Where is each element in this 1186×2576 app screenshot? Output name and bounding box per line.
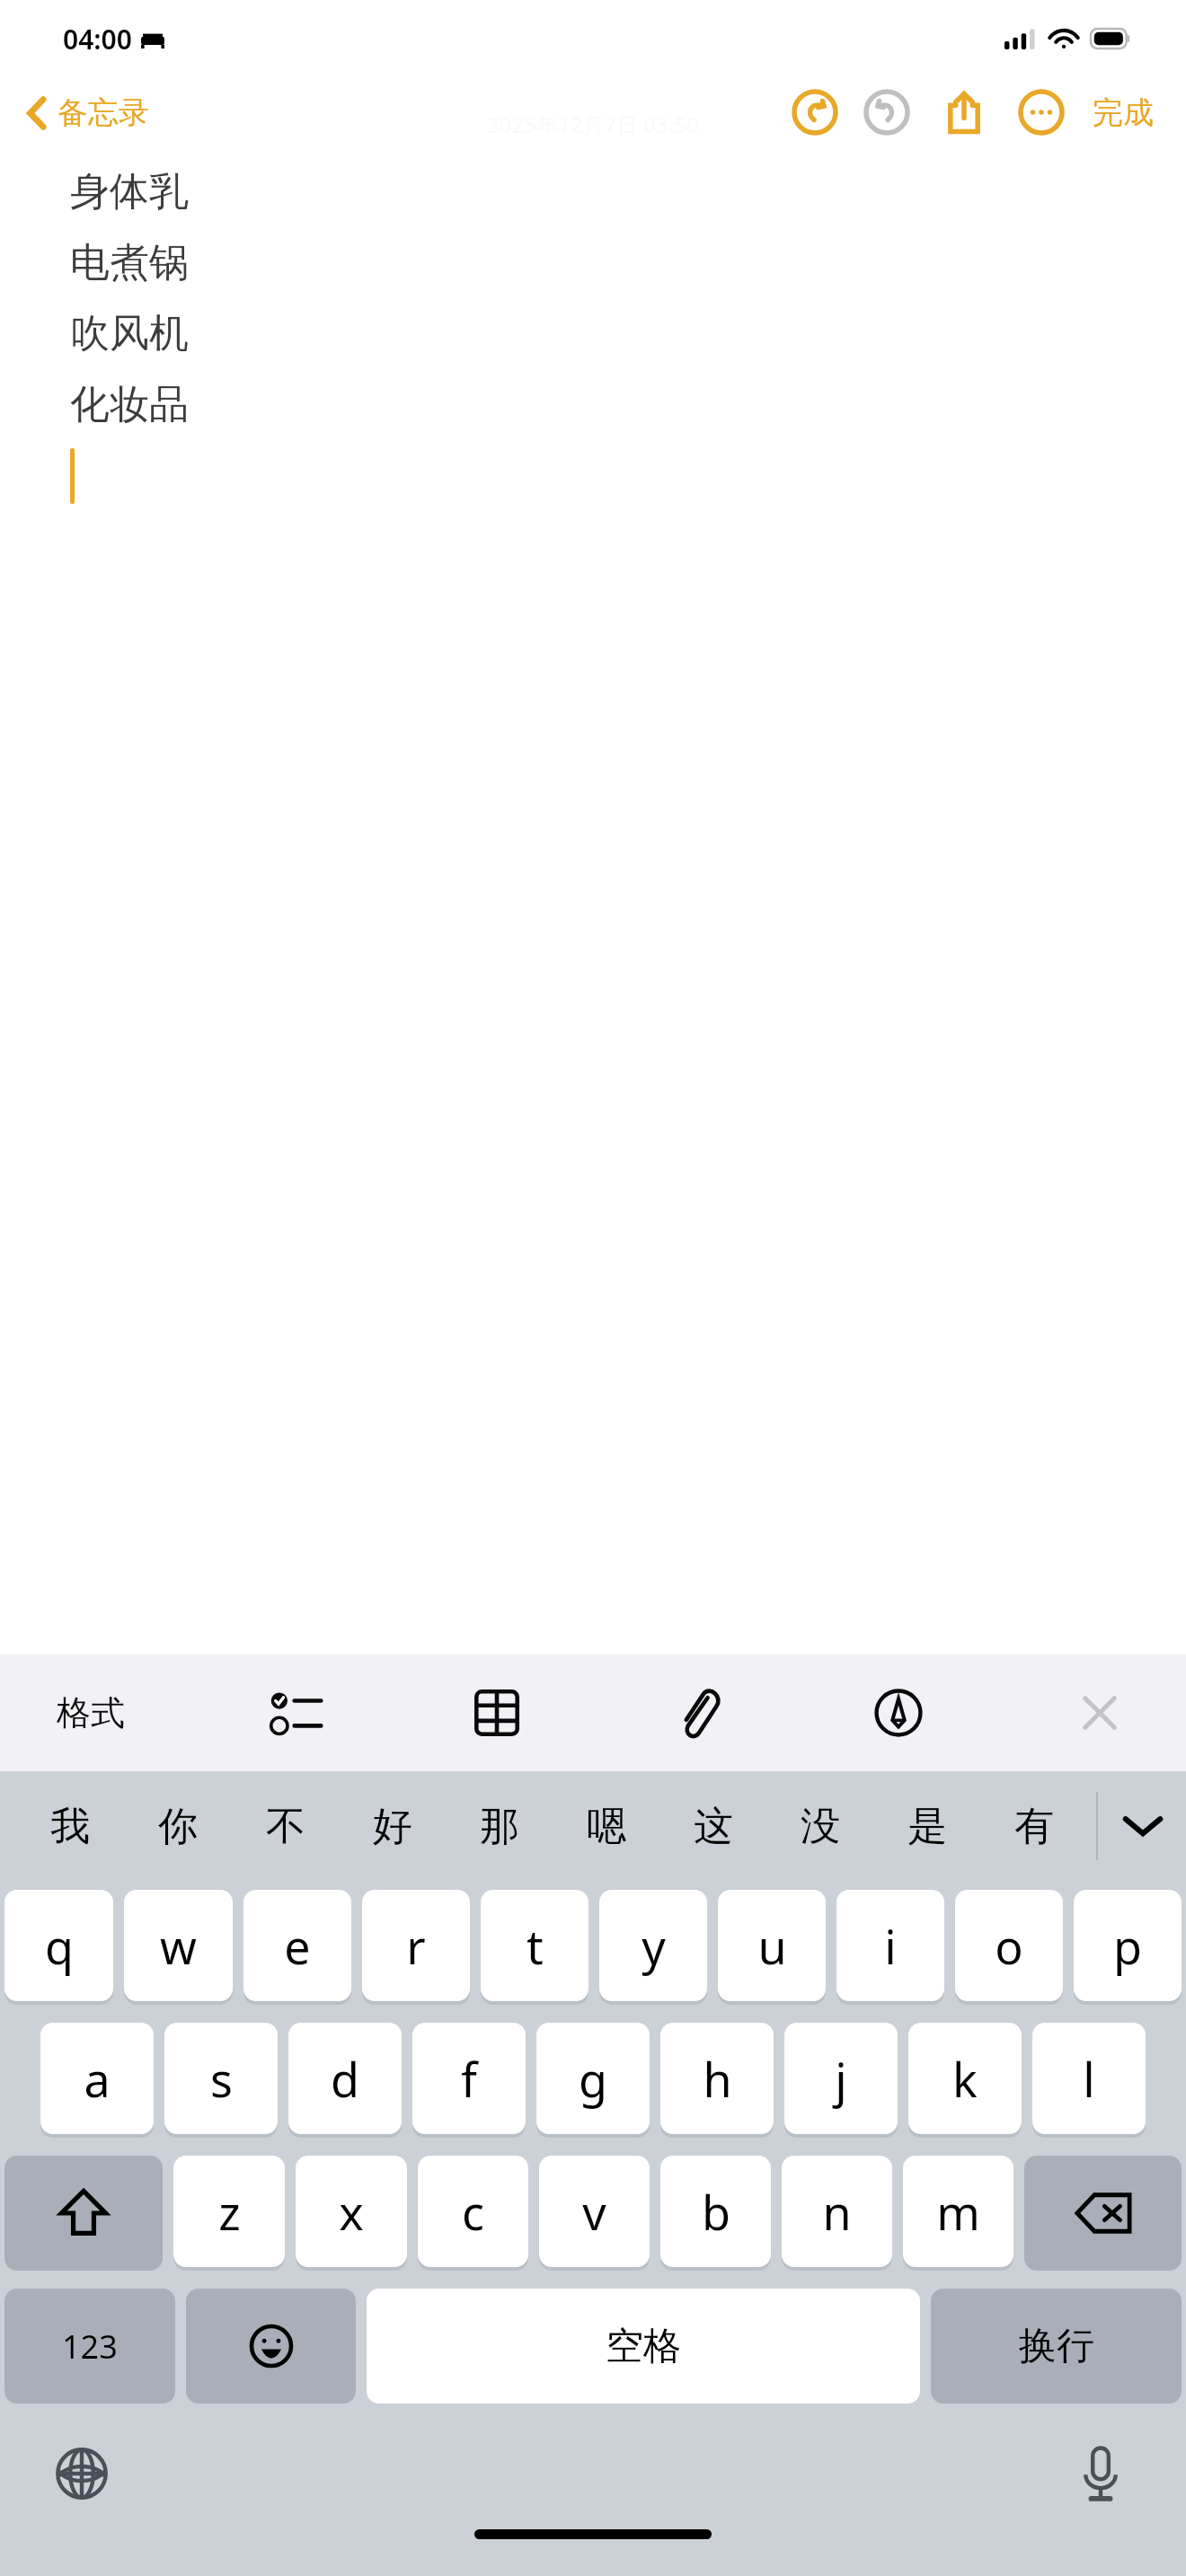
staticText: f xyxy=(461,2047,477,2111)
staticText: 换行 xyxy=(1019,2323,1094,2370)
staticText: t xyxy=(527,1914,544,1978)
staticText: 123 xyxy=(62,2325,118,2369)
button[interactable]: 换行 xyxy=(931,2289,1182,2404)
button[interactable]: More options xyxy=(1015,86,1067,138)
button[interactable]: Shift xyxy=(4,2156,163,2271)
staticText: 电煮锅 xyxy=(70,238,189,287)
button[interactable]: q xyxy=(4,1890,113,2001)
button[interactable]: x xyxy=(296,2156,407,2267)
staticText: v xyxy=(582,2180,606,2244)
button[interactable]: 嗯 xyxy=(553,1771,659,1881)
staticText: 嗯 xyxy=(587,1802,626,1851)
button[interactable]: e xyxy=(243,1890,351,2001)
staticText: 完成 xyxy=(1093,93,1154,132)
button[interactable]: h xyxy=(660,2023,774,2134)
button[interactable]: 空格 xyxy=(367,2289,920,2404)
staticText: e xyxy=(284,1914,311,1978)
button[interactable]: 是 xyxy=(873,1771,980,1881)
staticText: 这 xyxy=(694,1802,733,1851)
button[interactable]: Checklist xyxy=(252,1672,341,1753)
button[interactable]: Dictate xyxy=(1062,2435,1139,2512)
button[interactable]: Delete xyxy=(1024,2156,1182,2271)
staticText: x xyxy=(339,2180,364,2244)
staticText: o xyxy=(995,1914,1023,1978)
button[interactable]: a xyxy=(40,2023,154,2134)
staticText: k xyxy=(952,2047,978,2111)
button[interactable]: 你 xyxy=(124,1771,232,1881)
staticText: b xyxy=(702,2180,730,2244)
button[interactable]: 格式 xyxy=(41,1672,140,1753)
staticText: 有 xyxy=(1014,1802,1054,1851)
button[interactable]: 完成 xyxy=(1087,88,1159,137)
button[interactable]: w xyxy=(124,1890,233,2001)
staticText: g xyxy=(579,2047,607,2111)
button[interactable]: i xyxy=(836,1890,944,2001)
staticText: 身体乳 xyxy=(70,167,189,216)
button[interactable]: p xyxy=(1074,1890,1182,2001)
staticText: 我 xyxy=(50,1802,90,1851)
button[interactable]: 好 xyxy=(339,1771,446,1881)
staticText: 那 xyxy=(480,1802,519,1851)
button[interactable]: 这 xyxy=(659,1771,766,1881)
button[interactable]: y xyxy=(599,1890,707,2001)
button[interactable]: Close xyxy=(1055,1672,1145,1753)
button[interactable]: 那 xyxy=(446,1771,553,1881)
button[interactable]: Markup xyxy=(854,1672,943,1753)
button[interactable]: 没 xyxy=(766,1771,873,1881)
button[interactable]: t xyxy=(481,1890,589,2001)
staticText: l xyxy=(1083,2047,1095,2111)
button[interactable]: k xyxy=(908,2023,1022,2134)
button[interactable]: n xyxy=(782,2156,892,2267)
button[interactable]: 我 xyxy=(16,1771,124,1881)
staticText: i xyxy=(884,1914,897,1978)
button[interactable]: j xyxy=(784,2023,898,2134)
staticText: 没 xyxy=(801,1802,840,1851)
button[interactable]: Undo xyxy=(789,86,841,138)
staticText: 好 xyxy=(373,1802,412,1851)
staticText: w xyxy=(160,1914,197,1978)
staticText: n xyxy=(822,2180,852,2244)
button[interactable]: 备忘录 xyxy=(20,88,156,137)
staticText: 空格 xyxy=(606,2323,681,2370)
staticText: j xyxy=(835,2047,847,2111)
button[interactable]: d xyxy=(288,2023,402,2134)
button[interactable]: u xyxy=(718,1890,826,2001)
button[interactable]: b xyxy=(660,2156,771,2267)
staticText: r xyxy=(406,1914,426,1978)
staticText: 不 xyxy=(266,1802,305,1851)
button[interactable]: 有 xyxy=(980,1771,1087,1881)
staticText: q xyxy=(45,1914,74,1978)
staticText: u xyxy=(757,1914,787,1978)
staticText: 吹风机 xyxy=(70,309,189,358)
staticText: s xyxy=(210,2047,233,2111)
staticText: 化妆品 xyxy=(70,380,189,429)
button[interactable]: Emoji xyxy=(186,2289,356,2404)
staticText: m xyxy=(936,2180,980,2244)
button[interactable]: Table xyxy=(452,1672,542,1753)
staticText: p xyxy=(1113,1914,1142,1978)
button[interactable]: 不 xyxy=(232,1771,339,1881)
button[interactable]: m xyxy=(903,2156,1013,2267)
staticText: h xyxy=(703,2047,732,2111)
button[interactable]: 123 xyxy=(4,2289,175,2404)
button[interactable]: Attach xyxy=(653,1672,743,1753)
button[interactable]: l xyxy=(1032,2023,1146,2134)
button[interactable]: s xyxy=(164,2023,278,2134)
button[interactable]: z xyxy=(173,2156,285,2267)
staticText: z xyxy=(218,2180,241,2244)
staticText: 格式 xyxy=(57,1691,125,1734)
button[interactable]: g xyxy=(536,2023,650,2134)
button[interactable]: c xyxy=(418,2156,528,2267)
staticText: 你 xyxy=(158,1802,198,1851)
button[interactable]: Redo xyxy=(861,86,913,138)
button[interactable]: f xyxy=(412,2023,526,2134)
button[interactable]: o xyxy=(955,1890,1063,2001)
button[interactable]: Switch keyboard xyxy=(43,2435,120,2512)
button[interactable]: Share xyxy=(938,86,990,138)
button[interactable]: v xyxy=(539,2156,650,2267)
staticText: a xyxy=(84,2047,111,2111)
button[interactable]: More candidates xyxy=(1100,1771,1186,1881)
staticText: 是 xyxy=(907,1802,947,1851)
button[interactable]: r xyxy=(362,1890,470,2001)
